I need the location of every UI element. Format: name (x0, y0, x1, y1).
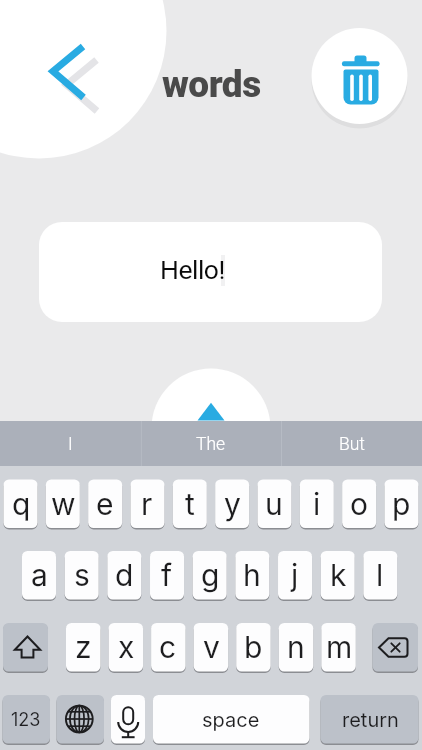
staticText: a (31, 557, 48, 593)
staticText: m (326, 629, 353, 665)
staticText: x (118, 629, 135, 665)
staticText: r (141, 486, 153, 522)
staticText: f (161, 557, 173, 593)
staticText: The (196, 434, 226, 455)
staticText: g (201, 557, 220, 593)
staticText: space (202, 708, 260, 732)
staticText: i (313, 486, 321, 522)
staticText: l (376, 557, 384, 593)
staticText: I (68, 434, 73, 455)
staticText: o (350, 486, 368, 522)
staticText: d (115, 557, 134, 593)
staticText: words (162, 63, 261, 106)
staticText: u (265, 486, 283, 522)
staticText: s (74, 557, 90, 593)
staticText: n (287, 629, 305, 665)
staticText: But (339, 434, 365, 455)
staticText: c (159, 629, 177, 665)
staticText: y (224, 486, 241, 522)
staticText: h (243, 557, 261, 593)
staticText: 123 (11, 709, 41, 731)
staticText: Hello! (160, 254, 225, 285)
staticText: v (203, 629, 220, 665)
staticText: return (342, 708, 399, 732)
staticText: p (392, 486, 411, 522)
staticText: k (330, 557, 347, 593)
staticText: z (75, 629, 92, 665)
staticText: t (185, 486, 195, 522)
staticText: j (291, 557, 299, 593)
staticText: e (96, 486, 114, 522)
staticText: q (12, 486, 31, 522)
staticText: b (244, 629, 263, 665)
staticText: w (51, 486, 76, 522)
